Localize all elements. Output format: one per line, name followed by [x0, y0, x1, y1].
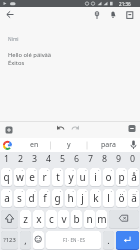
staticText: a [4, 191, 10, 205]
staticText: 3 [32, 153, 38, 165]
button[interactable]: , [20, 231, 31, 250]
button[interactable]: å [128, 168, 139, 187]
staticText: 21:36 [119, 1, 131, 7]
button[interactable]: t [52, 168, 63, 187]
button[interactable]: o [103, 168, 114, 187]
staticText: Éxitos [8, 59, 25, 67]
button[interactable]: 5 [56, 152, 70, 166]
button[interactable] [0, 46, 140, 121]
button[interactable]: e [26, 168, 37, 187]
button[interactable]: l [103, 189, 114, 208]
staticText: g [54, 191, 61, 205]
button[interactable] [68, 123, 82, 136]
staticText: s [17, 191, 22, 205]
button[interactable] [109, 210, 139, 229]
button[interactable]: . [103, 231, 114, 250]
button[interactable] [2, 124, 14, 136]
staticText: Nimi [8, 36, 19, 43]
button[interactable]: 6 [70, 152, 84, 166]
button[interactable]: r [39, 168, 50, 187]
staticText: t [56, 170, 60, 184]
button[interactable]: g [52, 189, 63, 208]
button[interactable]: q [1, 168, 12, 187]
button[interactable]: h [65, 189, 76, 208]
button[interactable]: 8 [98, 152, 112, 166]
button[interactable]: 3 [28, 152, 42, 166]
button[interactable] [127, 138, 140, 152]
staticText: 0 [130, 153, 136, 165]
button[interactable]: y [52, 138, 86, 152]
button[interactable]: k [90, 189, 101, 208]
staticText: å [131, 170, 137, 184]
button[interactable] [106, 7, 120, 23]
button[interactable]: c [46, 210, 57, 229]
button[interactable] [116, 231, 139, 250]
staticText: x [36, 212, 42, 226]
button[interactable]: 1 [0, 152, 14, 166]
button[interactable] [33, 231, 44, 250]
staticText: v [61, 212, 67, 226]
button[interactable]: b [71, 210, 82, 229]
button[interactable]: 7 [84, 152, 98, 166]
button[interactable]: u [77, 168, 88, 187]
staticText: i [94, 170, 97, 184]
button[interactable] [54, 123, 68, 136]
staticText: w [16, 170, 24, 184]
staticText: o [105, 170, 112, 184]
button[interactable]: 2 [14, 152, 28, 166]
staticText: q [3, 170, 10, 184]
staticText: 7 [88, 153, 94, 165]
button[interactable] [1, 139, 15, 151]
staticText: 8 [102, 153, 108, 165]
button[interactable] [122, 7, 136, 23]
button[interactable]: s [14, 189, 25, 208]
button[interactable]: en [18, 138, 50, 152]
button[interactable]: p [116, 168, 127, 187]
button[interactable]: i [90, 168, 101, 187]
button[interactable] [1, 210, 18, 229]
staticText: 5 [60, 153, 66, 165]
button[interactable]: w [14, 168, 25, 187]
button[interactable]: x [33, 210, 44, 229]
staticText: en [30, 140, 39, 150]
button[interactable] [3, 7, 18, 23]
staticText: ?123 [3, 236, 16, 244]
button[interactable]: FI · EN · ES [46, 231, 101, 250]
button[interactable] [90, 7, 104, 23]
button[interactable]: f [39, 189, 50, 208]
staticText: ö [118, 191, 125, 205]
button[interactable]: m [96, 210, 107, 229]
button[interactable]: ö [116, 189, 127, 208]
button[interactable] [0, 24, 140, 46]
button[interactable]: z [20, 210, 31, 229]
staticText: r [42, 170, 47, 184]
staticText: f [43, 191, 47, 205]
staticText: 4 [46, 153, 52, 165]
staticText: Hello olé päivää [8, 51, 52, 59]
staticText: u [79, 170, 86, 184]
staticText: y [68, 170, 74, 184]
staticText: h [67, 191, 74, 205]
staticText: c [49, 212, 54, 226]
button[interactable]: a [1, 189, 12, 208]
staticText: , [24, 234, 27, 246]
staticText: p [118, 170, 125, 184]
button[interactable]: 0 [126, 152, 140, 166]
button[interactable]: d [26, 189, 37, 208]
button[interactable] [126, 122, 138, 135]
staticText: 2 [18, 153, 24, 165]
button[interactable]: ä [128, 189, 139, 208]
staticText: j [81, 191, 84, 205]
button[interactable]: n [84, 210, 95, 229]
button[interactable]: 4 [42, 152, 56, 166]
staticText: l [107, 191, 110, 205]
staticText: . [107, 234, 110, 246]
button[interactable]: y [65, 168, 76, 187]
button[interactable]: para [89, 138, 127, 152]
button[interactable]: ?123 [1, 231, 18, 250]
staticText: para [101, 140, 116, 150]
button[interactable]: v [58, 210, 69, 229]
staticText: z [23, 212, 28, 226]
button[interactable]: j [77, 189, 88, 208]
button[interactable]: 9 [112, 152, 126, 166]
